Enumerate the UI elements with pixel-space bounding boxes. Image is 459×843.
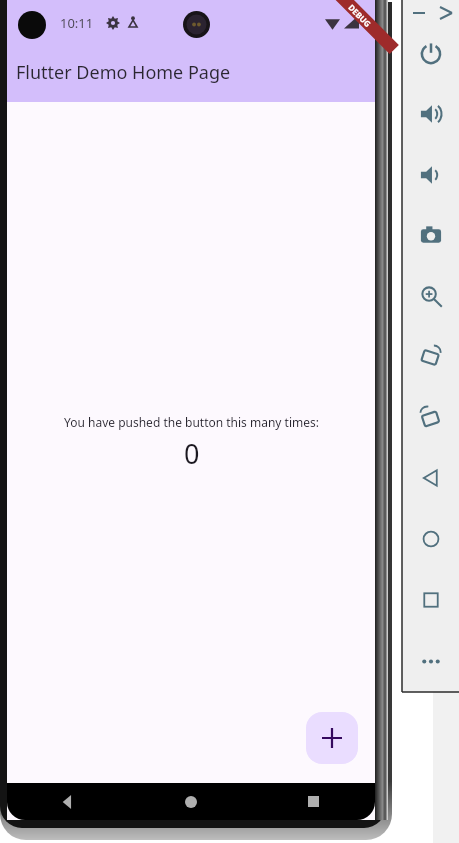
button[interactable]: Home [129, 783, 252, 820]
staticText: You have pushed the button this many tim… [64, 414, 319, 430]
button[interactable]: Increment [306, 712, 358, 764]
button[interactable]: Volume down [415, 159, 447, 191]
button[interactable]: Home [415, 523, 447, 555]
staticText: 0 [184, 435, 200, 472]
button[interactable]: More [415, 645, 447, 677]
button[interactable]: Back [7, 783, 129, 820]
button[interactable]: Zoom [415, 280, 447, 312]
button[interactable]: Back [415, 462, 447, 494]
button[interactable]: Rotate right [415, 402, 447, 434]
staticText: Flutter Demo Home Page [16, 60, 231, 85]
button[interactable]: Recent apps [252, 783, 375, 820]
button[interactable]: Overview [415, 584, 447, 616]
button[interactable]: Minimize [408, 2, 430, 24]
button[interactable]: Volume up [415, 98, 447, 130]
staticText: DEBUG [346, 2, 374, 29]
button[interactable]: Screenshot [415, 219, 447, 251]
button[interactable]: Close [435, 2, 457, 24]
button[interactable]: Rotate left [415, 341, 447, 373]
staticText: 10:11 [60, 14, 94, 32]
button[interactable]: Power [415, 38, 447, 70]
